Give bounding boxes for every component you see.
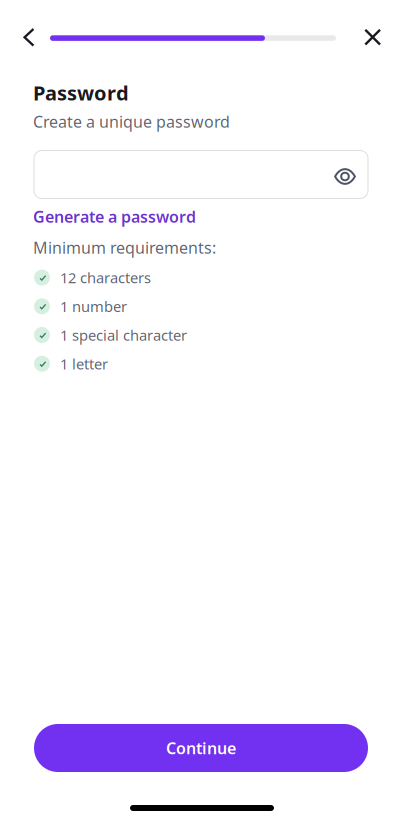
staticText: Continue <box>166 737 236 759</box>
staticText: 1 number <box>60 297 127 316</box>
secureTextField[interactable]: Password <box>34 150 368 198</box>
staticText: 12 characters <box>60 268 151 287</box>
button[interactable]: Continue <box>34 724 368 772</box>
button[interactable]: Show password <box>326 156 362 192</box>
staticText: Create a unique password <box>33 111 230 132</box>
button[interactable]: Generate a password <box>33 208 196 225</box>
staticText: Generate a password <box>33 206 196 227</box>
button[interactable]: Close <box>357 20 389 54</box>
staticText: 1 letter <box>60 354 108 373</box>
staticText: 1 special character <box>60 325 187 345</box>
staticText: Minimum requirements: <box>33 237 216 258</box>
progressIndicator: Sign-up progress <box>50 35 336 41</box>
button[interactable]: Back <box>14 19 44 55</box>
staticText: Password <box>33 79 129 106</box>
